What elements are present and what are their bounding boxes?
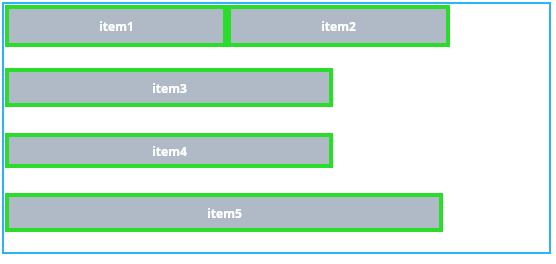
button[interactable]: item1: [5, 5, 227, 47]
button[interactable]: item5: [5, 193, 443, 232]
staticText: item2: [321, 18, 356, 34]
staticText: item5: [207, 205, 242, 221]
button[interactable]: item4: [5, 133, 333, 168]
staticText: item1: [99, 18, 134, 34]
staticText: item4: [152, 143, 187, 159]
button[interactable]: item3: [5, 68, 333, 107]
staticText: item3: [152, 80, 187, 96]
button[interactable]: item2: [227, 5, 450, 47]
